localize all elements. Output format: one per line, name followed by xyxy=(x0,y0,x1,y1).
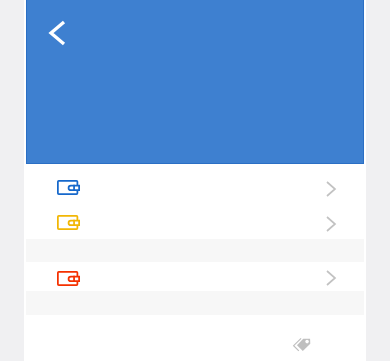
button[interactable]: Wallet account xyxy=(26,170,364,204)
button[interactable]: Back xyxy=(33,9,81,57)
button[interactable]: Credit account xyxy=(26,261,364,295)
button[interactable]: Tags xyxy=(282,325,322,361)
button[interactable]: Cash account xyxy=(26,205,364,239)
